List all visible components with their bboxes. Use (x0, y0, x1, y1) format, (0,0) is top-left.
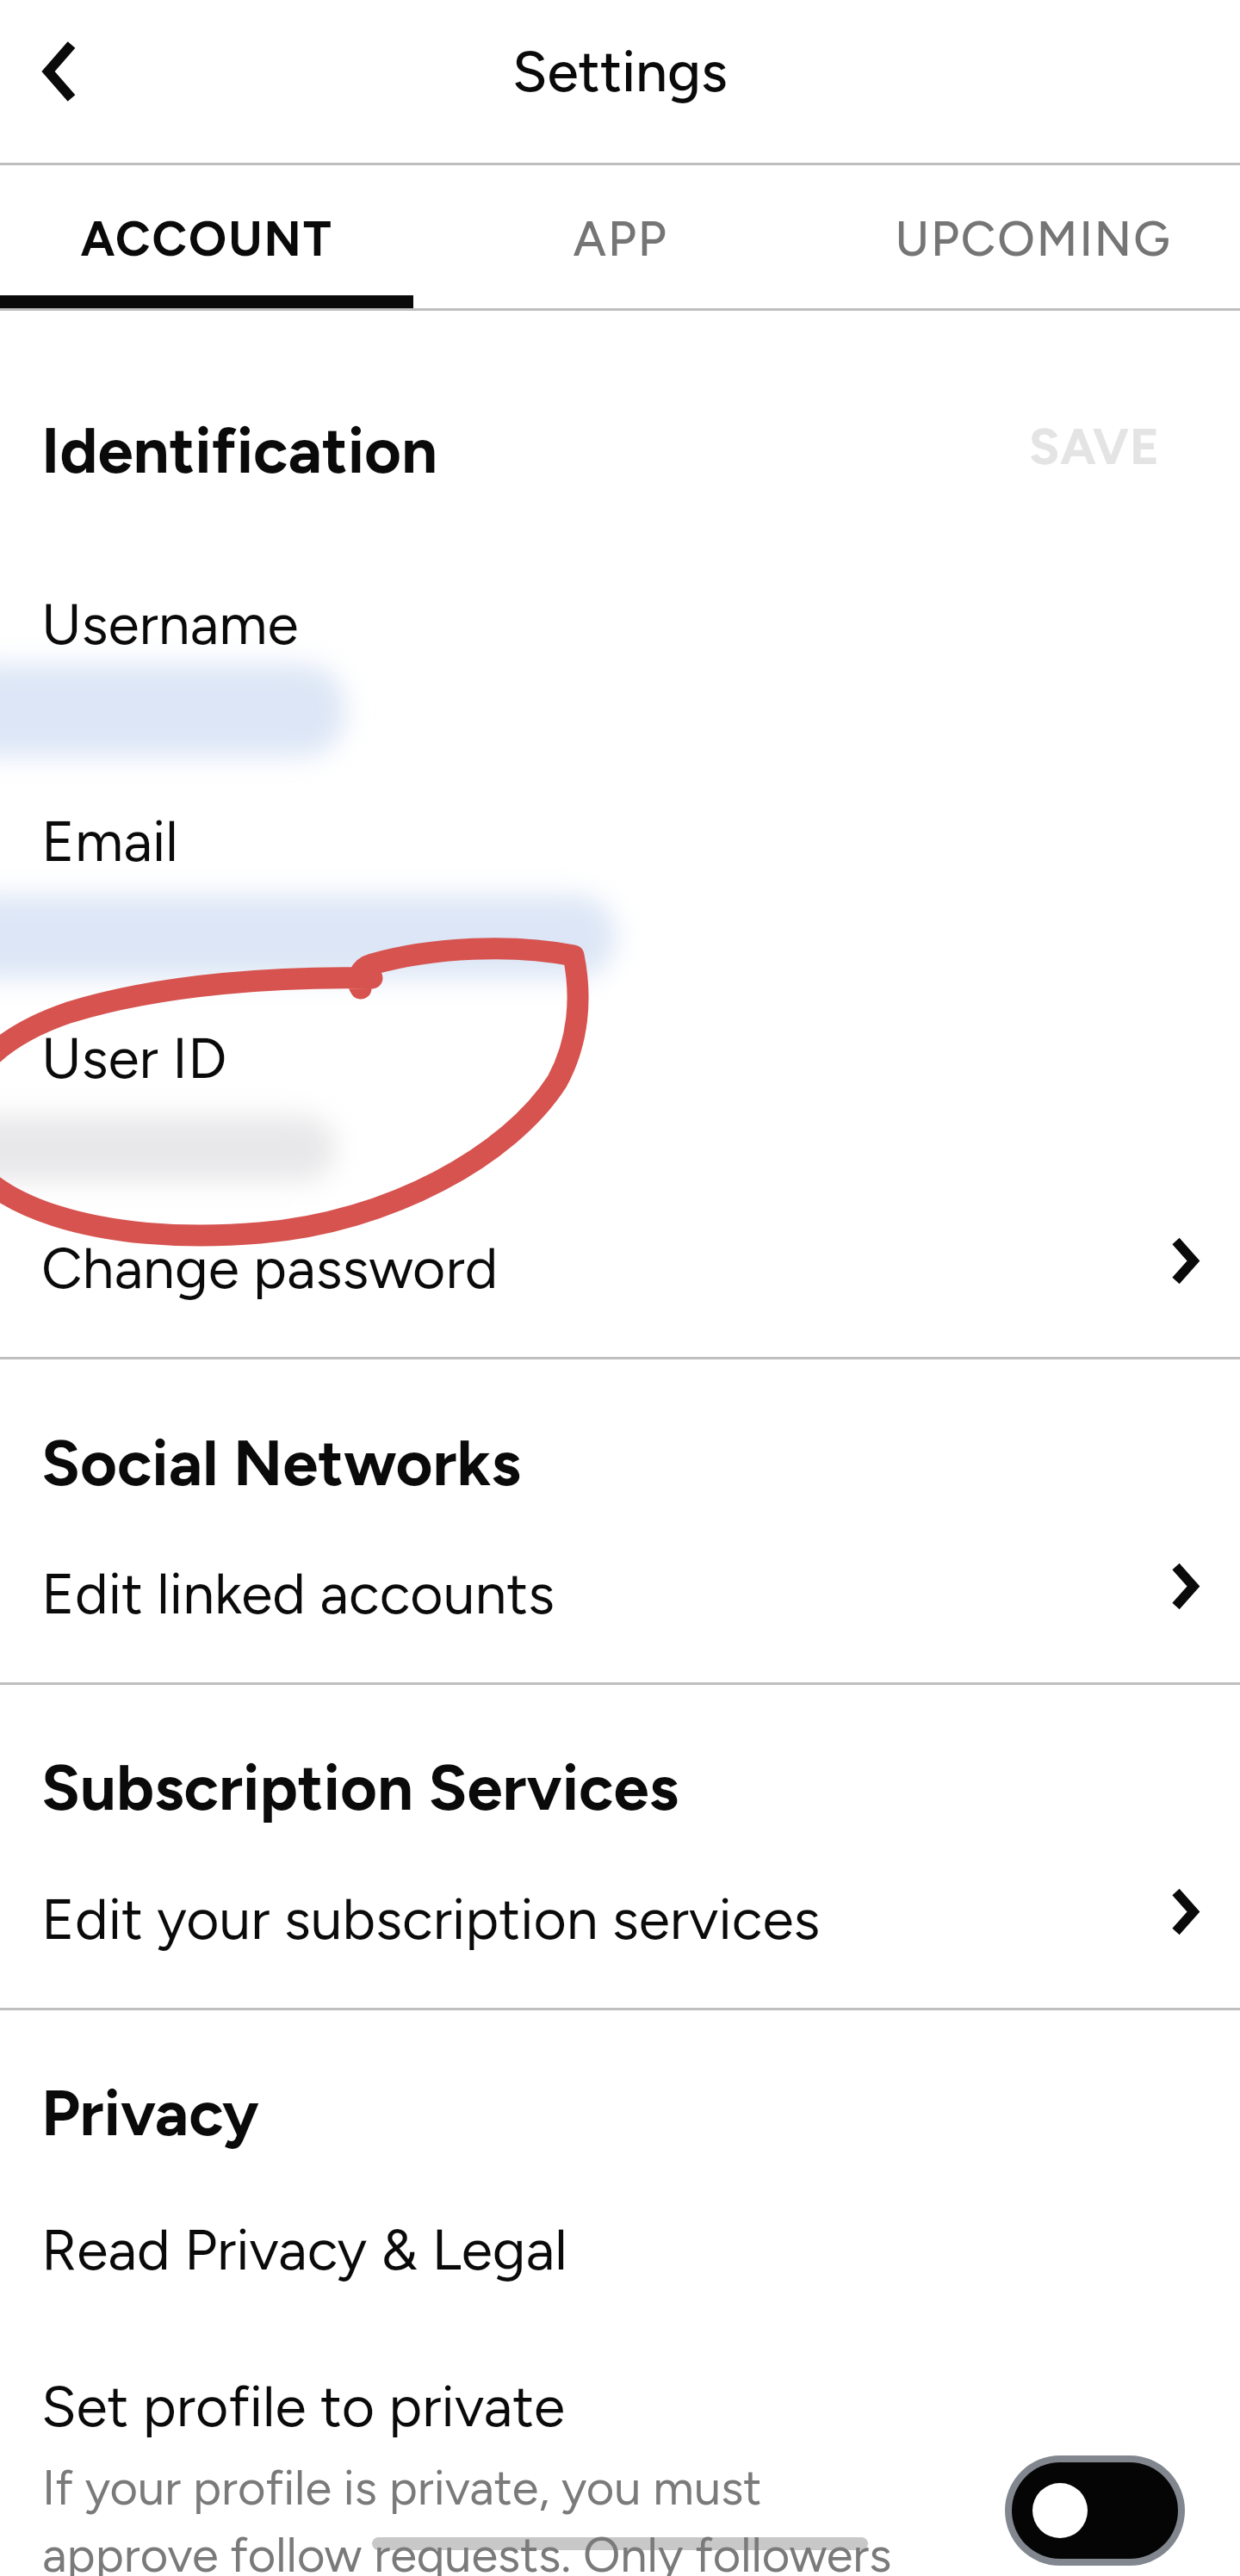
staticText: If your profile is private, you must app… (42, 2459, 892, 2576)
button[interactable]: ACCOUNT (0, 161, 413, 308)
staticText: Privacy (41, 2075, 259, 2152)
button[interactable]: Change password (0, 1197, 1240, 1340)
staticText: Edit your subscription services (41, 1885, 821, 1953)
staticText: Edit linked accounts (41, 1559, 555, 1627)
staticText: ACCOUNT (80, 210, 333, 268)
staticText: Settings (512, 37, 728, 105)
staticText: SAVE (1029, 417, 1161, 477)
staticText: User ID (41, 1024, 227, 1092)
button[interactable]: Read Privacy & Legal (0, 2191, 1240, 2312)
staticText: Identification (41, 412, 438, 489)
staticText: Email (41, 807, 178, 875)
staticText: Subscription Services (41, 1749, 679, 1826)
staticText: UPCOMING (895, 210, 1172, 268)
button[interactable]: SAVE (995, 386, 1206, 498)
button[interactable]: Back (8, 20, 111, 123)
staticText: Read Privacy & Legal (41, 2215, 567, 2283)
button[interactable]: Set profile to private (1012, 2462, 1178, 2559)
staticText: Social Networks (41, 1425, 521, 1502)
button[interactable]: Edit linked accounts (0, 1524, 1240, 1666)
button[interactable]: Edit your subscription services (0, 1849, 1240, 1991)
staticText: Set profile to private (41, 2372, 565, 2440)
staticText: APP (573, 210, 668, 268)
button[interactable]: APP (413, 161, 827, 308)
staticText: Change password (41, 1234, 499, 1302)
button[interactable]: UPCOMING (827, 161, 1240, 308)
staticText: Username (41, 590, 299, 658)
